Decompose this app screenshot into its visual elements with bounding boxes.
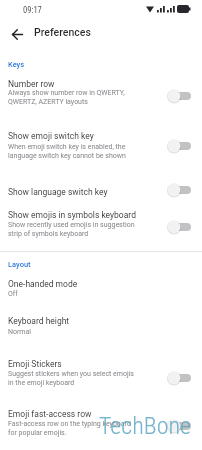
staticText: Always show number row in QWERTY, QWERTZ…	[8, 89, 125, 106]
staticText: Layout	[8, 260, 31, 269]
button[interactable]: Show emoji switch key	[0, 126, 202, 164]
button[interactable]: One-handed mode	[0, 272, 202, 306]
staticText: Keyboard height	[8, 316, 70, 326]
button[interactable]: Number row	[0, 74, 202, 113]
staticText: Keys	[8, 60, 25, 69]
staticText: Number row	[8, 79, 55, 89]
button[interactable]	[8, 25, 26, 43]
staticText: One-handed mode	[8, 279, 78, 289]
staticText: Preferences	[34, 26, 91, 38]
button[interactable]: Show language switch key	[0, 178, 202, 206]
button[interactable]: Emoji fast-access row	[0, 402, 202, 442]
staticText: TechBone	[99, 412, 191, 440]
staticText: When emoji switch key is enabled, the la…	[8, 143, 126, 160]
staticText: Emoji Stickers	[8, 359, 62, 369]
staticText: Suggest stickers when you select emojis …	[8, 370, 134, 387]
staticText: Fast-access row on the typing keyboard f…	[8, 420, 131, 437]
staticText: Show recently used emojis in suggestion …	[8, 221, 135, 238]
staticText: Show emoji switch key	[8, 131, 94, 141]
staticText: Normal	[8, 328, 32, 336]
button[interactable]: Keyboard height	[0, 309, 202, 344]
staticText: Off	[8, 290, 18, 298]
button[interactable]: Emoji Stickers	[0, 352, 202, 390]
staticText: Show emojis in symbols keyboard	[8, 210, 136, 220]
staticText: Show language switch key	[8, 187, 108, 197]
staticText: Emoji fast-access row	[8, 409, 92, 419]
button[interactable]: Show emojis in symbols keyboard	[0, 205, 202, 243]
staticText: 09:17	[23, 5, 42, 15]
